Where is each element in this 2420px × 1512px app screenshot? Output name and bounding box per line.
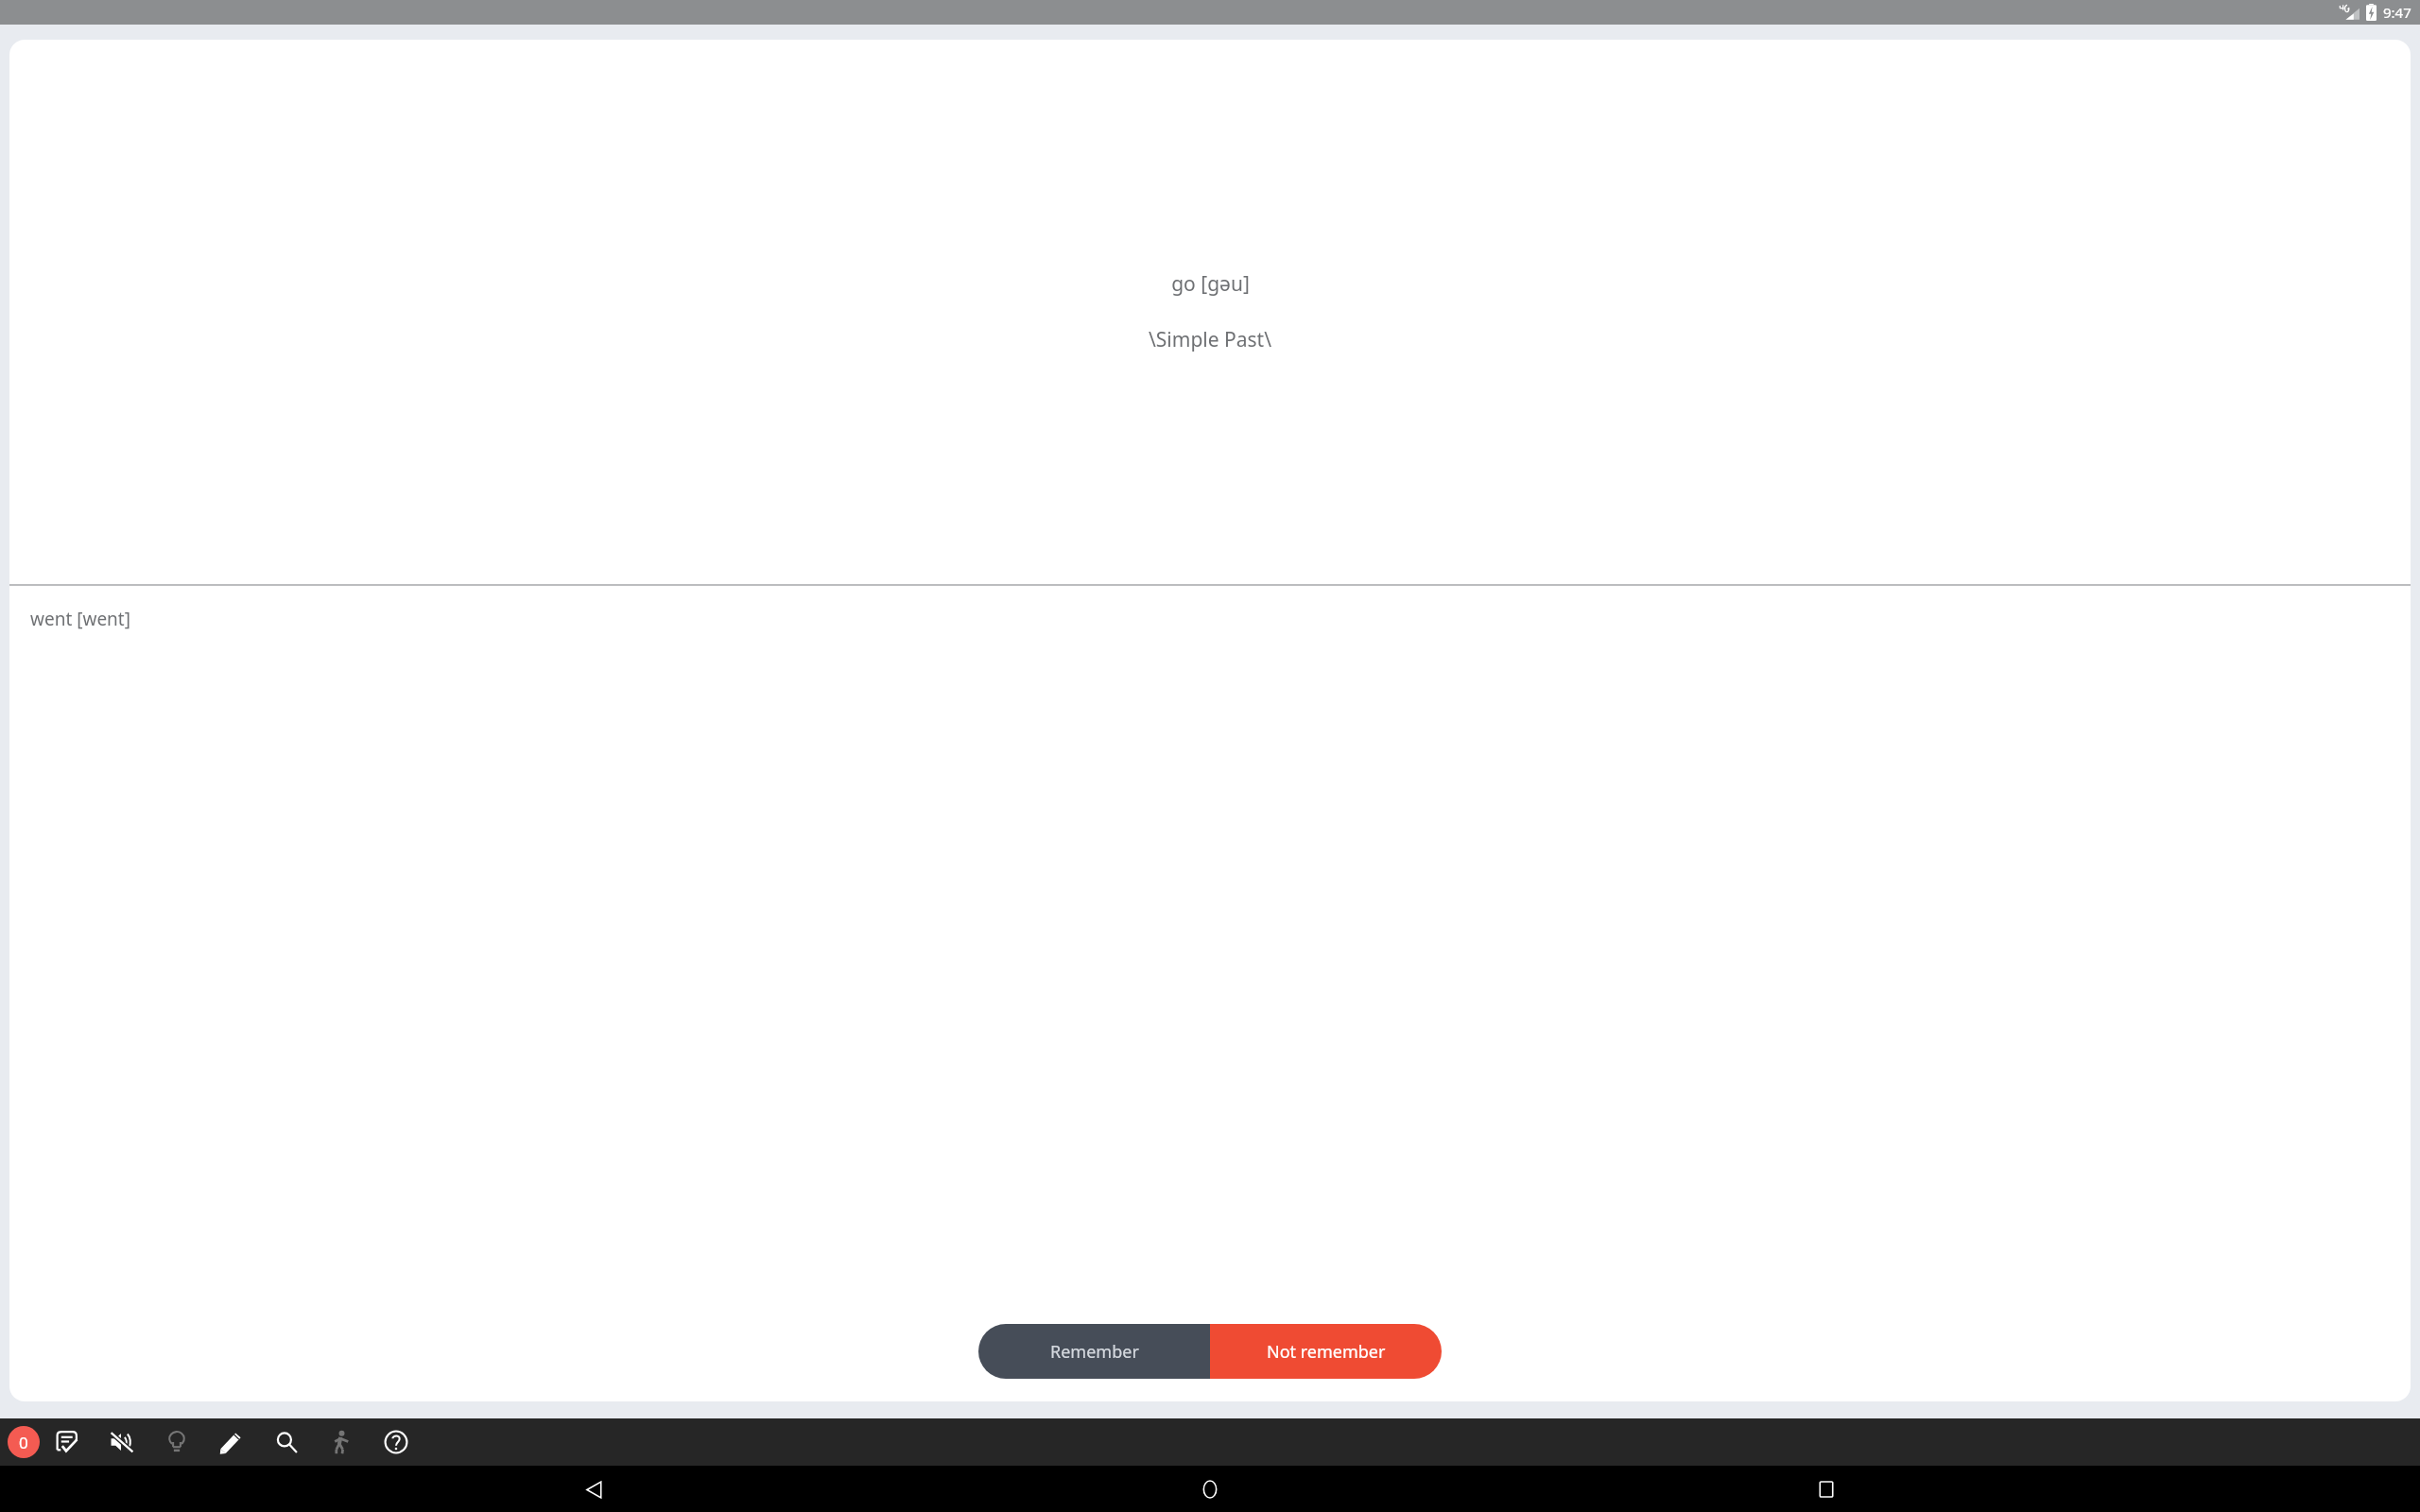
staticText: 9:47 (2383, 3, 2411, 22)
button[interactable]: Mute sound (95, 1418, 149, 1466)
button[interactable]: Help (369, 1418, 423, 1466)
button[interactable]: Search (259, 1418, 314, 1466)
button[interactable]: go [gəu] (9, 40, 2411, 584)
staticText: 0 (19, 1432, 28, 1453)
staticText: go [gəu] (1171, 270, 1250, 298)
button[interactable]: Activity (314, 1418, 369, 1466)
staticText: \Simple Past\ (1149, 326, 1271, 353)
button[interactable]: Lists (40, 1418, 95, 1466)
staticText: Not remember (1267, 1340, 1386, 1364)
staticText: Remember (1050, 1340, 1139, 1364)
button[interactable]: Back (571, 1467, 616, 1512)
button[interactable]: Home (1187, 1467, 1233, 1512)
button[interactable]: Recent apps (1804, 1467, 1849, 1512)
button[interactable]: Remember (978, 1324, 1210, 1379)
button[interactable]: Hint (149, 1418, 204, 1466)
button[interactable]: Counter (8, 1426, 40, 1458)
button[interactable]: Edit (204, 1418, 259, 1466)
staticText: went [went] (30, 607, 130, 631)
button[interactable]: Not remember (1210, 1324, 1442, 1379)
